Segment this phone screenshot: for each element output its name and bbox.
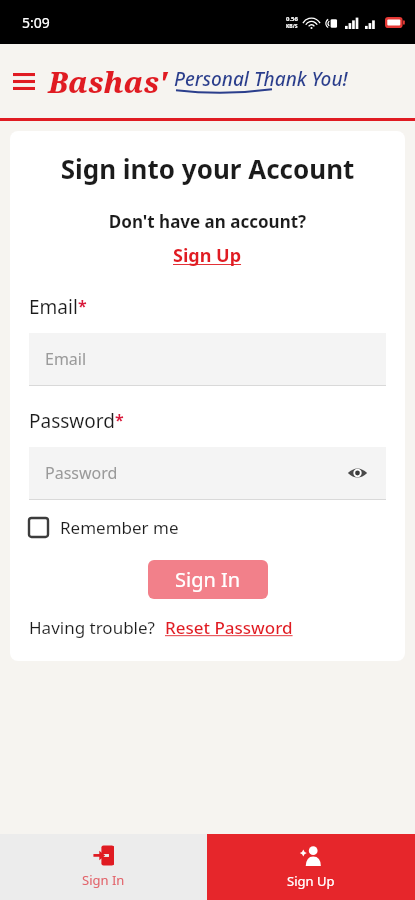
button[interactable]: Sign Up [167,241,248,270]
staticText: * [115,409,124,431]
staticText: Personal Thank You! [174,66,348,92]
staticText: Reset Password [165,616,293,639]
button[interactable]: Sign Up [207,834,415,900]
staticText: * [78,295,87,317]
staticText: Sign In [82,871,125,889]
button[interactable]: Remember me [29,512,179,543]
button[interactable]: Password [29,447,386,499]
staticText: Don't have an account? [29,210,386,233]
other: Sign In [93,845,114,866]
staticText: Email [29,294,78,320]
staticText: Email [45,348,87,370]
staticText: Having trouble? [29,616,155,639]
staticText: Sign In [175,566,241,593]
staticText: 0.56 [286,15,298,23]
staticText: Bashas' [48,62,168,101]
staticText: Sign Up [287,872,335,890]
other: Sign Up [300,845,322,867]
button[interactable]: Show password [344,460,370,486]
staticText: Sign into your Account [29,151,386,186]
button[interactable]: Reset Password [163,614,295,641]
button[interactable]: Email [29,333,386,385]
staticText: Password [45,462,118,484]
button[interactable]: Sign In [148,560,268,599]
button[interactable]: Sign In [0,834,207,900]
staticText: Sign Up [173,243,242,268]
staticText: Remember me [60,516,179,539]
staticText: 5:09 [22,13,50,32]
staticText: Password [29,408,115,434]
staticText: KB/S [286,23,298,30]
button[interactable]: Open navigation menu [4,61,44,101]
